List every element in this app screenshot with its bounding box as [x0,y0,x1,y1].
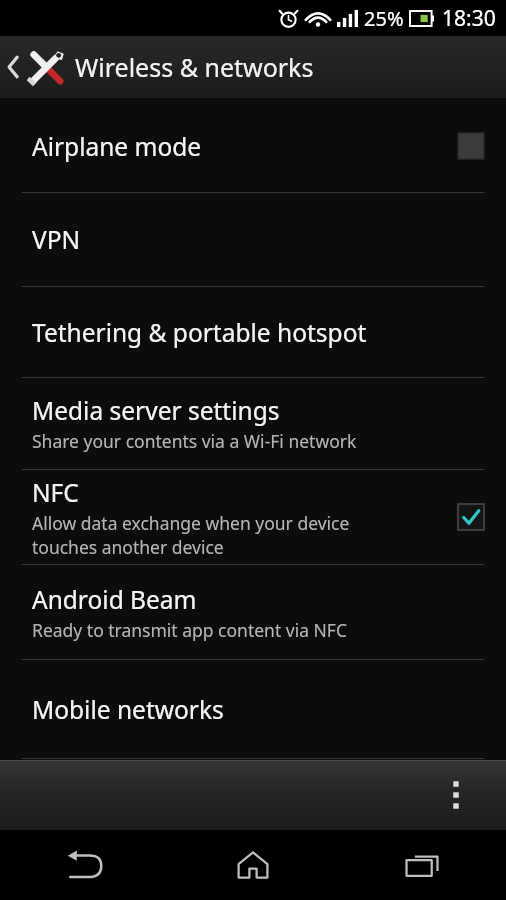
button[interactable]: Home [168,830,337,900]
button[interactable]: NFC [0,470,506,564]
button[interactable]: Recent apps [337,830,506,900]
staticText: 18:30 [442,4,496,33]
button[interactable]: Mobile networks [0,660,506,758]
staticText: Airplane mode [32,130,202,163]
staticText: Ready to transmit app content via NFC [32,618,347,642]
button[interactable]: Media server settings [0,378,506,469]
button[interactable]: Disabled [458,133,484,159]
button[interactable]: Back [0,830,168,900]
staticText: Share your contents via a Wi-Fi network [32,429,357,453]
staticText: Wireless & networks [75,50,314,84]
staticText: Tethering & portable hotspot [32,316,367,349]
button[interactable]: Tethering & portable hotspot [0,287,506,377]
staticText: NFC [32,476,79,509]
staticText: Media server settings [32,394,280,427]
staticText: VPN [32,223,81,256]
staticText: 25% [364,5,404,32]
button[interactable]: Android Beam [0,565,506,659]
button[interactable]: Enabled [458,504,484,530]
button[interactable]: Up, Wireless & networks [0,36,506,98]
button[interactable]: VPN [0,193,506,286]
button[interactable]: More options [436,770,476,820]
staticText: Android Beam [32,583,197,616]
staticText: Allow data exchange when your device tou… [32,511,350,559]
button[interactable]: Airplane mode [0,100,506,192]
staticText: Mobile networks [32,693,224,726]
